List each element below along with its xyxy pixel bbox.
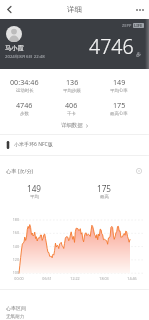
staticText: 4746	[89, 33, 134, 60]
staticText: 120	[8, 257, 19, 262]
staticText: 平均	[30, 194, 39, 200]
staticText: 100	[8, 270, 19, 275]
staticText: 马小霞	[5, 44, 24, 52]
button[interactable]: 小米手环6 NFC版	[0, 134, 149, 155]
staticText: 406	[65, 100, 78, 110]
staticText: 136	[66, 77, 79, 87]
button[interactable]: 详细数据	[0, 120, 149, 131]
staticText: 小米手环6 NFC版	[14, 141, 53, 148]
staticText: 160	[8, 230, 19, 235]
staticText: 详细数据	[61, 122, 83, 129]
button[interactable]: Info	[134, 166, 143, 175]
staticText: 18:03	[94, 276, 114, 281]
staticText: LIFE	[134, 23, 143, 28]
staticText: 详细	[67, 5, 82, 14]
staticText: 149	[113, 77, 126, 87]
staticText: 175	[113, 100, 126, 110]
staticText: 心率 (次/分)	[6, 167, 34, 174]
staticText: 12:22	[65, 276, 85, 281]
staticText: 140	[8, 244, 19, 249]
staticText: 2024年8月6日 22:48	[5, 53, 45, 59]
staticText: 00:00	[9, 276, 29, 281]
staticText: 步数	[20, 111, 29, 117]
staticText: 4746	[16, 100, 33, 110]
staticText: 心率区间	[6, 305, 26, 311]
staticText: 最高心率	[110, 111, 128, 117]
staticText: 14:46	[122, 276, 142, 281]
staticText: 无氧耐力	[6, 314, 25, 320]
staticText: 步	[136, 51, 141, 57]
staticText: 平均步频	[63, 88, 81, 94]
staticText: 06:51	[37, 276, 57, 281]
staticText: 千卡	[67, 111, 76, 117]
staticText: 平均心率	[110, 88, 128, 94]
button[interactable]: More options	[130, 0, 149, 19]
staticText: 149	[27, 183, 42, 194]
staticText: 最高	[100, 194, 109, 200]
staticText: 180	[8, 217, 19, 222]
staticText: 175	[97, 183, 112, 194]
staticText: 运动时长	[16, 88, 34, 94]
button[interactable]: Back	[0, 0, 19, 19]
staticText: 00:34:46	[10, 77, 39, 87]
staticText: ZEPP	[122, 23, 132, 28]
